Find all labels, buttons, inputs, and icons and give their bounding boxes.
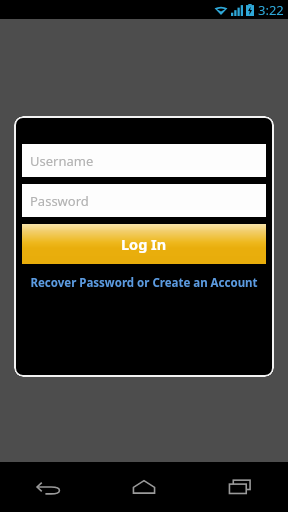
button[interactable]: Log In [22,224,266,264]
button[interactable]: Recover Password or Create an Account [22,273,266,293]
staticText: Log In [121,234,167,254]
staticText: Password [30,192,89,210]
button[interactable]: Back [0,462,96,512]
button[interactable]: Username [22,144,266,177]
button[interactable]: Home [96,462,192,512]
staticText: Recover Password or Create an Account [30,275,258,291]
staticText: Username [30,152,94,170]
button[interactable]: Recent apps [192,462,288,512]
button[interactable]: Password [22,184,266,217]
staticText: 3:22 [258,1,284,19]
